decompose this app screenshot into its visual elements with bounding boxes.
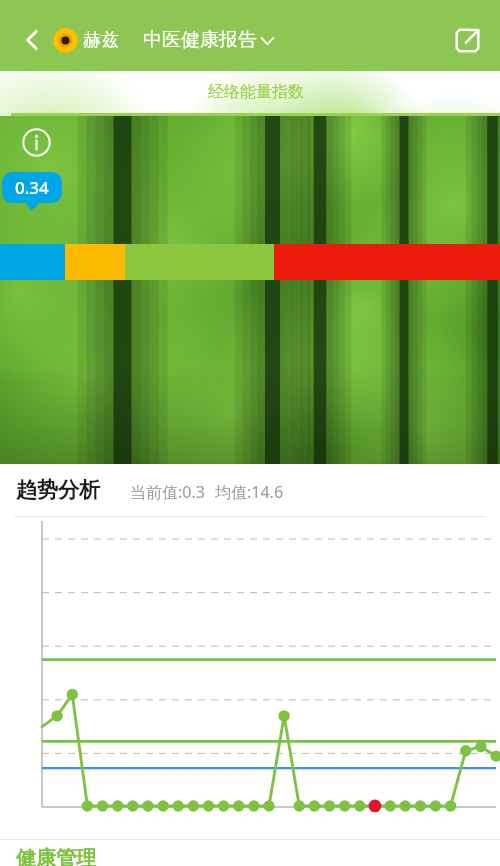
staticText: 中医健康报告 [143, 28, 257, 52]
staticText: 均值:14.6 [215, 481, 284, 503]
staticText: 当前值:0.3 [130, 481, 205, 503]
staticText: 0.34 [15, 176, 49, 199]
button[interactable]: Back [14, 22, 50, 58]
staticText: 健康管理 [16, 846, 96, 866]
button[interactable]: 中医健康报告 [143, 28, 275, 52]
button[interactable]: Share [444, 17, 490, 63]
button[interactable]: 赫兹 [52, 27, 119, 54]
button[interactable]: Info [17, 123, 55, 161]
staticText: 经络能量指数 [208, 82, 304, 102]
staticText: 赫兹 [83, 29, 119, 52]
staticText: 趋势分析 [16, 477, 100, 503]
button[interactable]: 经络能量指数 [11, 71, 500, 116]
